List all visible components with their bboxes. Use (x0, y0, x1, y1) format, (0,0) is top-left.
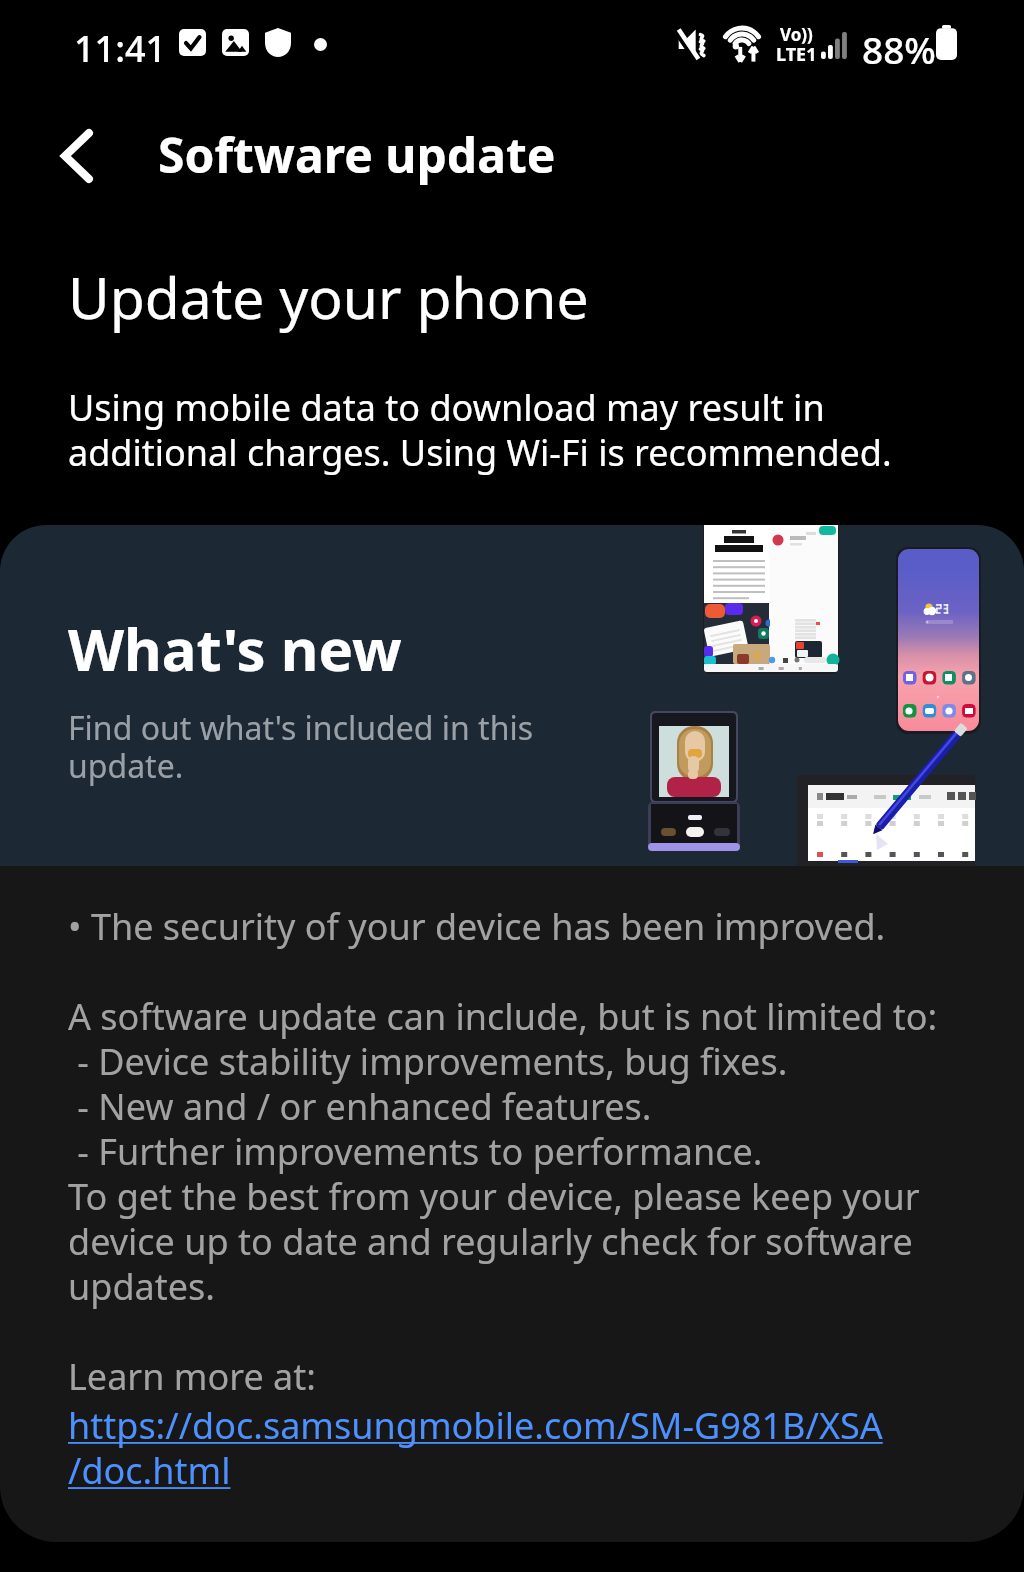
staticText: LTE1 (776, 42, 817, 67)
staticText: Find out what's included in this update. (68, 706, 534, 787)
staticText: • The security of your device has been i… (68, 902, 938, 1401)
staticText: 88% (862, 24, 936, 74)
staticText: What's new (68, 609, 402, 688)
staticText: Using mobile data to download may result… (68, 383, 892, 477)
button[interactable]: https://doc.samsungmobile.com/SM-G981B/X… (68, 1401, 883, 1495)
button[interactable]: Back (22, 101, 132, 211)
staticText: Update your phone (68, 258, 589, 336)
staticText: Vo)) (780, 23, 813, 46)
staticText: Software update (158, 122, 556, 187)
staticText: 11:41 (74, 24, 167, 73)
button[interactable]: What's new (0, 525, 1024, 866)
